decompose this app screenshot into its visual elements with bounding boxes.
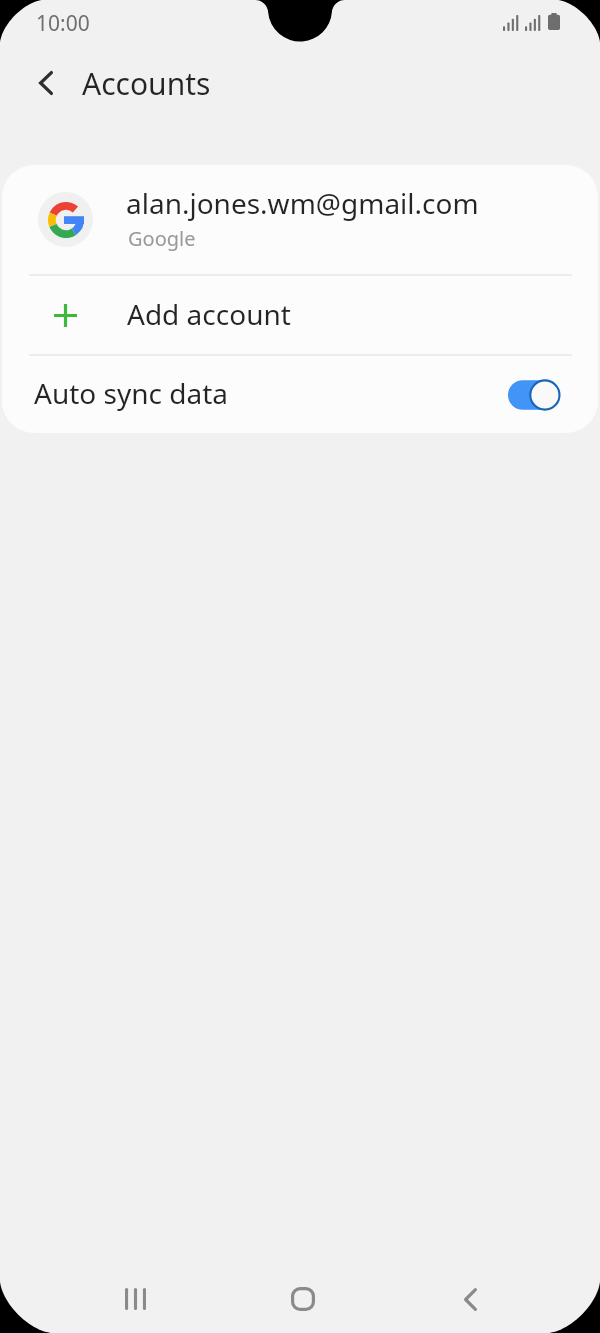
button[interactable]: alan.jones.wm@gmail.com	[2, 165, 598, 274]
staticText: alan.jones.wm@gmail.com	[126, 184, 479, 222]
button[interactable]: Auto sync data	[2, 356, 598, 433]
button[interactable]: Home	[255, 1265, 351, 1333]
staticText: Auto sync data	[34, 374, 228, 412]
staticText: Accounts	[82, 63, 211, 104]
button[interactable]: Recent apps	[87, 1265, 183, 1333]
button[interactable]: Add account	[2, 276, 598, 354]
staticText: 10:00	[36, 9, 90, 38]
button[interactable]: Navigate up	[22, 59, 70, 107]
staticText: Add account	[127, 295, 291, 333]
button[interactable]: Back	[422, 1265, 518, 1333]
staticText: Google	[128, 225, 196, 252]
